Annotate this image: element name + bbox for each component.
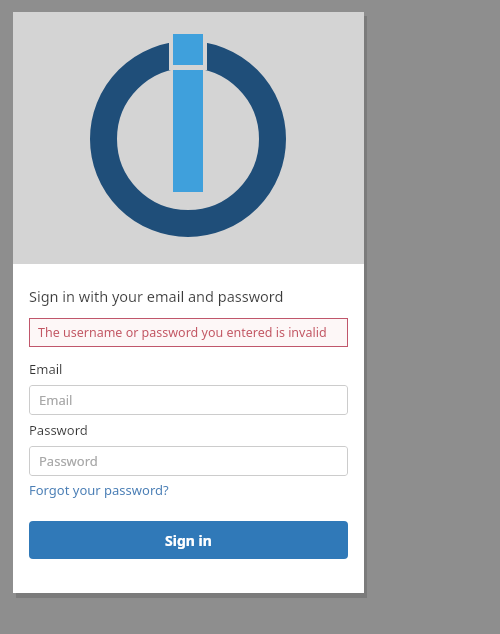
button[interactable]: Sign in xyxy=(29,521,348,559)
staticText: Password xyxy=(29,421,88,439)
staticText: Email xyxy=(39,391,73,409)
staticText: Email xyxy=(29,360,63,378)
staticText: Password xyxy=(39,452,98,470)
button[interactable]: Forgot your password? xyxy=(29,481,169,499)
staticText: Forgot your password? xyxy=(29,481,169,499)
button[interactable]: Email xyxy=(29,385,348,415)
staticText: Sign in xyxy=(165,531,212,550)
staticText: The username or password you entered is … xyxy=(38,324,327,341)
staticText: Sign in with your email and password xyxy=(29,286,284,306)
button[interactable]: Password xyxy=(29,446,348,476)
